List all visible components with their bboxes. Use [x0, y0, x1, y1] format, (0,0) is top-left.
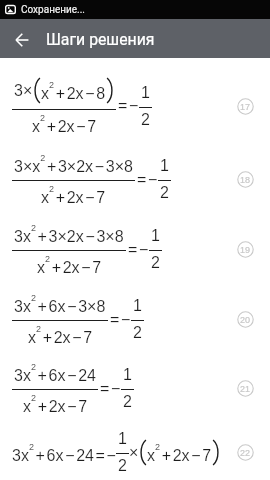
- staticText: 20: [240, 315, 251, 325]
- staticText: =: [137, 171, 147, 189]
- staticText: x2 + 2x − 7: [41, 184, 106, 206]
- staticText: 2: [118, 457, 127, 475]
- staticText: x2 + 2x − 7: [147, 442, 212, 464]
- staticText: −: [121, 311, 131, 329]
- staticText: 3x2 + 6x − 24 = −: [12, 442, 116, 464]
- staticText: 3x2 + 3×2x − 3×8: [14, 223, 124, 245]
- staticText: 1: [160, 157, 169, 175]
- staticText: 19: [240, 245, 251, 255]
- staticText: =: [118, 97, 128, 115]
- staticText: 3x2 + 6x − 24: [14, 362, 96, 384]
- staticText: 1: [151, 227, 160, 245]
- staticText: 2: [123, 393, 132, 411]
- staticText: −: [129, 97, 139, 115]
- staticText: 22: [240, 448, 251, 458]
- staticText: ×: [129, 444, 139, 462]
- staticText: −: [148, 171, 158, 189]
- staticText: 17: [240, 102, 251, 112]
- button[interactable]: 3x2 + 6x − 24 = −: [0, 422, 270, 480]
- staticText: =: [110, 311, 120, 329]
- staticText: =: [128, 241, 138, 259]
- staticText: 3×: [14, 82, 33, 100]
- staticText: 3x2 + 6x − 3×8: [14, 293, 106, 315]
- staticText: −: [111, 380, 121, 398]
- staticText: 1: [118, 430, 127, 448]
- staticText: x2 + 2x − 7: [23, 393, 88, 415]
- staticText: x2 + 2x − 8: [41, 80, 106, 102]
- staticText: 21: [240, 384, 251, 394]
- button[interactable]: 3×: [0, 76, 270, 136]
- staticText: x2 + 2x − 7: [37, 254, 102, 276]
- button[interactable]: 3x2 + 3×2x − 3×8: [0, 219, 270, 279]
- staticText: 2: [141, 111, 150, 129]
- staticText: x2 + 2x − 7: [28, 324, 93, 346]
- staticText: =: [100, 380, 110, 398]
- staticText: −: [139, 241, 149, 259]
- staticText: 1: [141, 84, 150, 102]
- staticText: 2: [151, 254, 160, 272]
- button[interactable]: 3x2 + 6x − 3×8: [0, 289, 270, 349]
- staticText: x2 + 2x − 7: [32, 113, 97, 135]
- button[interactable]: 3×x2 + 3×2x − 3×8: [0, 149, 270, 209]
- staticText: 1: [123, 366, 132, 384]
- staticText: 2: [133, 324, 142, 342]
- staticText: 18: [240, 175, 251, 185]
- button[interactable]: 3x2 + 6x − 24: [0, 358, 270, 418]
- staticText: Сохранение...: [21, 4, 85, 16]
- staticText: 2: [160, 184, 169, 202]
- staticText: Шаги решения: [46, 30, 155, 49]
- button[interactable]: Назад: [0, 19, 43, 58]
- staticText: 1: [133, 297, 142, 315]
- staticText: 3×x2 + 3×2x − 3×8: [14, 153, 133, 175]
